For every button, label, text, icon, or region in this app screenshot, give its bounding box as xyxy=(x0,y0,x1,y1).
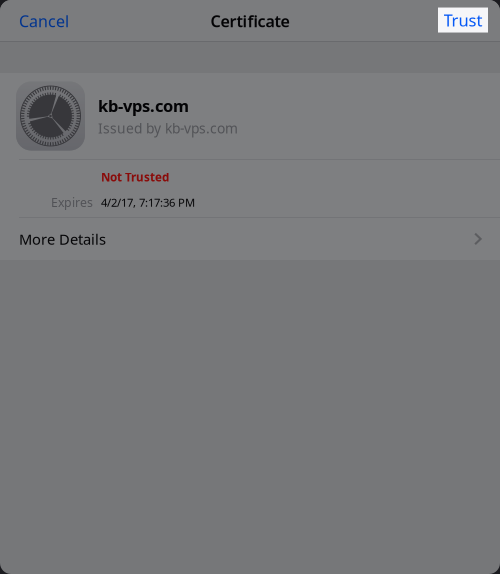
staticText: Trust xyxy=(443,9,482,31)
staticText: Cancel xyxy=(19,10,69,32)
staticText: Not Trusted xyxy=(101,169,169,185)
staticText: kb-vps.com xyxy=(98,94,189,117)
button[interactable]: More Details xyxy=(0,218,500,260)
staticText: Certificate xyxy=(210,10,289,32)
staticText: Expires xyxy=(51,194,93,211)
staticText: More Details xyxy=(19,229,106,249)
staticText: Issued by kb-vps.com xyxy=(98,119,238,138)
staticText: 4/2/17, 7:17:36 PM xyxy=(101,195,195,210)
button[interactable]: Cancel xyxy=(0,0,81,42)
button[interactable]: Trust xyxy=(438,7,488,32)
